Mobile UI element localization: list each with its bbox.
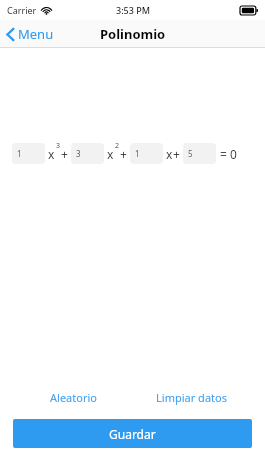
staticText: 1: [135, 148, 140, 159]
staticText: x: [48, 146, 55, 162]
staticText: x: [107, 146, 114, 162]
staticText: +: [120, 146, 127, 162]
staticText: 3: [56, 141, 61, 151]
button[interactable]: 3: [71, 143, 104, 164]
button[interactable]: 5: [183, 143, 216, 164]
staticText: Aleatorio: [50, 390, 97, 405]
button[interactable]: 1: [12, 143, 45, 164]
staticText: 3: [76, 148, 81, 159]
button[interactable]: Limpiar datos: [132, 385, 251, 410]
staticText: 2: [115, 141, 120, 151]
button[interactable]: 1: [130, 143, 163, 164]
button[interactable]: Menu: [0, 20, 62, 48]
staticText: +: [173, 146, 180, 162]
button[interactable]: Aleatorio: [14, 385, 132, 410]
staticText: Polinomio: [100, 25, 166, 43]
staticText: Carrier: [7, 4, 37, 16]
staticText: +: [61, 146, 68, 162]
staticText: Limpiar datos: [156, 390, 227, 405]
staticText: Menu: [18, 25, 54, 43]
staticText: 5: [188, 148, 193, 159]
staticText: = 0: [220, 146, 237, 162]
staticText: Guardar: [109, 426, 156, 442]
staticText: 1: [17, 148, 22, 159]
staticText: x: [166, 146, 173, 162]
button[interactable]: Guardar: [13, 419, 252, 448]
staticText: 3:53 PM: [116, 4, 150, 16]
